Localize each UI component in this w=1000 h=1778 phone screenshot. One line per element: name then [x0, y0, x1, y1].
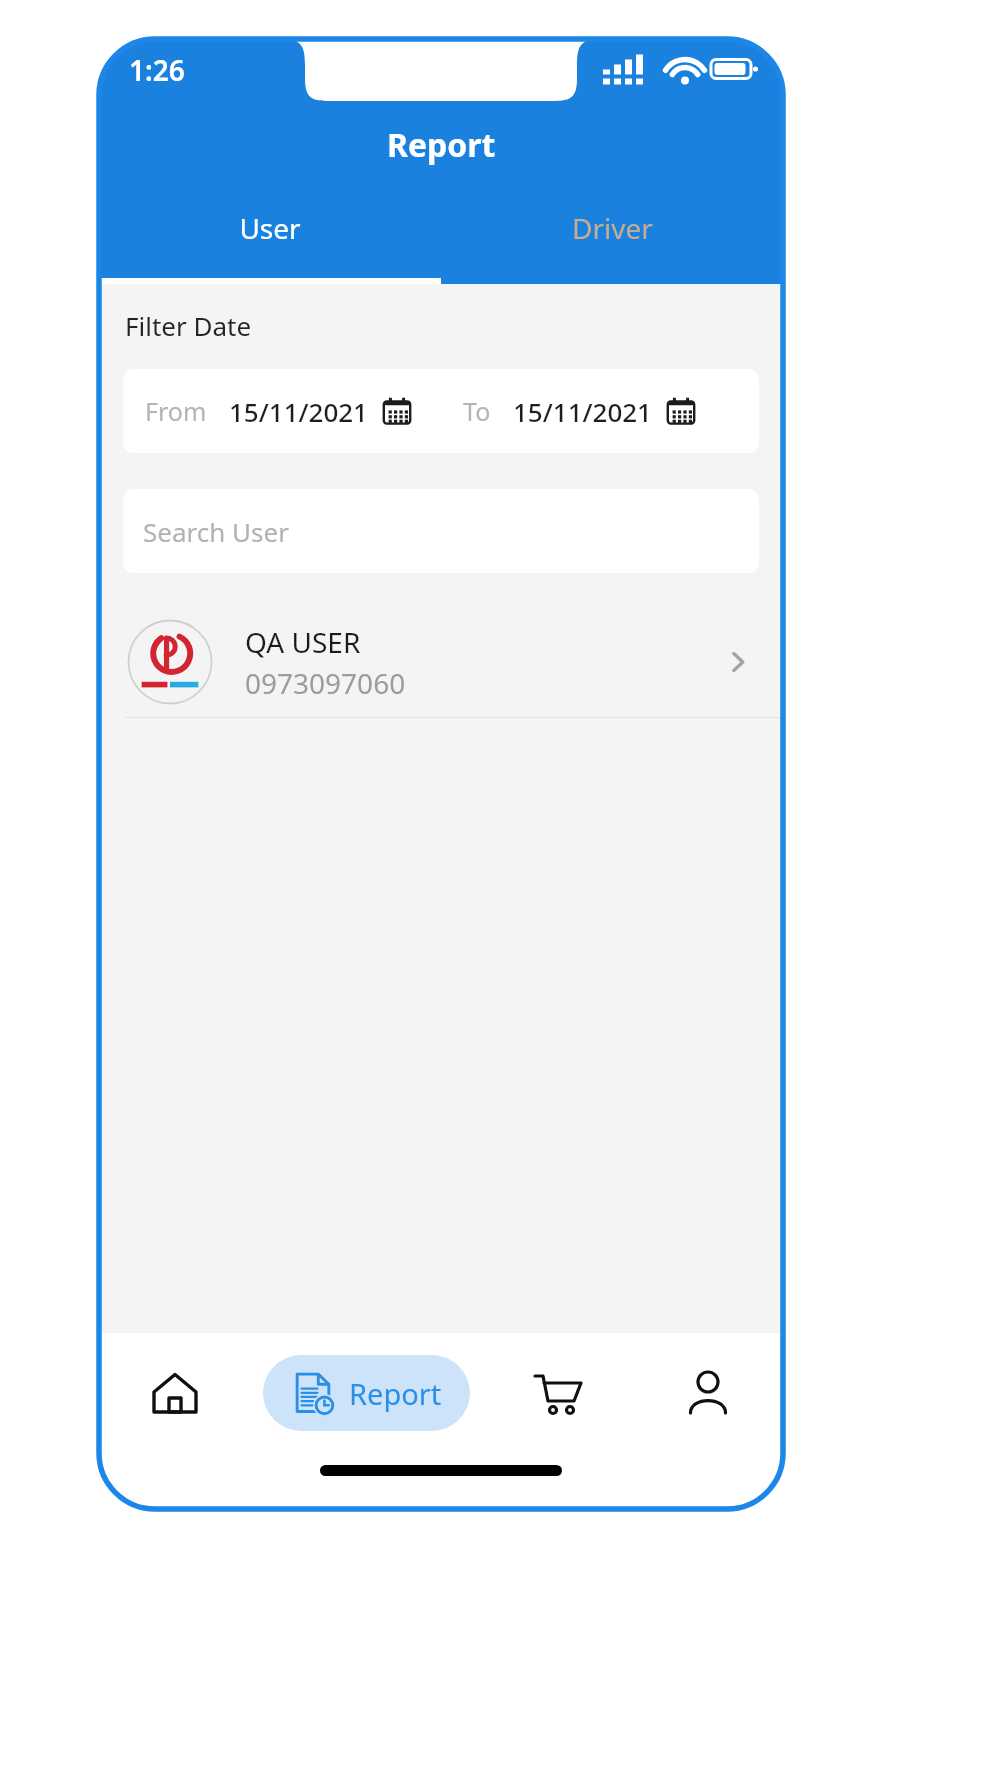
staticText: Filter Date — [125, 308, 252, 343]
staticText: Search User — [143, 514, 289, 549]
button[interactable]: Driver — [441, 188, 783, 284]
staticText: Report — [387, 123, 496, 167]
button[interactable]: To — [441, 369, 759, 453]
staticText: User — [239, 209, 301, 247]
button[interactable]: User — [99, 188, 441, 284]
other: Pick date — [666, 396, 696, 426]
staticText: 1:26 — [129, 51, 185, 89]
staticText: Driver — [572, 209, 653, 247]
other: Pick date — [382, 396, 412, 426]
staticText: Report — [349, 1374, 442, 1413]
button[interactable]: QA USER — [99, 607, 783, 717]
staticText: 0973097060 — [245, 664, 406, 702]
button[interactable]: From — [123, 369, 441, 453]
staticText: 15/11/2021 — [513, 394, 652, 429]
staticText: 15/11/2021 — [229, 394, 368, 429]
staticText: From — [145, 394, 207, 428]
staticText: To — [463, 394, 491, 428]
button[interactable]: Home — [99, 1333, 250, 1453]
button[interactable]: Search User — [123, 489, 759, 573]
button[interactable]: Profile — [633, 1333, 783, 1453]
staticText: QA USER — [245, 623, 361, 661]
button[interactable]: Cart — [483, 1333, 633, 1453]
button[interactable]: Report — [263, 1355, 470, 1431]
other: Open details — [723, 647, 753, 677]
